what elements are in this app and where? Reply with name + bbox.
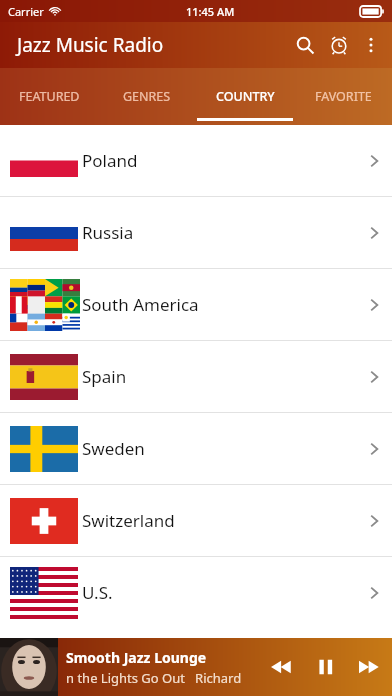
button[interactable]: FAVORITE <box>294 68 392 125</box>
button[interactable]: Switzerland <box>0 485 392 556</box>
button[interactable] <box>0 638 58 696</box>
button[interactable]: Poland <box>0 125 392 196</box>
button[interactable]: U.S. <box>0 557 392 628</box>
staticText: 11:45 AM <box>186 4 235 19</box>
staticText: South America <box>82 293 356 316</box>
staticText: FAVORITE <box>315 88 372 105</box>
staticText: Spain <box>82 365 356 388</box>
staticText: FEATURED <box>19 88 80 105</box>
staticText: Switzerland <box>82 509 356 532</box>
staticText: Sweden <box>82 437 356 460</box>
staticText: U.S. <box>82 581 356 604</box>
button[interactable]: GENRES <box>98 68 196 125</box>
button[interactable]: More options <box>356 30 386 60</box>
staticText: Russia <box>82 221 356 244</box>
staticText: Carrier <box>8 4 44 19</box>
button[interactable]: Previous <box>260 638 304 696</box>
button[interactable]: Sweden <box>0 413 392 484</box>
button[interactable]: South America <box>0 269 392 340</box>
staticText: COUNTRY <box>216 88 275 105</box>
staticText: Smooth Jazz Lounge <box>66 648 207 667</box>
button[interactable]: COUNTRY <box>196 68 294 125</box>
button[interactable]: FEATURED <box>0 68 98 125</box>
button[interactable]: Next <box>348 638 392 696</box>
button[interactable]: Russia <box>0 197 392 268</box>
staticText: n the Lights Go Out Richard Ell <box>66 669 256 687</box>
button[interactable]: Search <box>288 28 322 62</box>
button[interactable]: Spain <box>0 341 392 412</box>
button[interactable]: Sleep timer <box>322 28 356 62</box>
staticText: Poland <box>82 149 356 172</box>
staticText: Jazz Music Radio <box>17 32 164 58</box>
button[interactable]: Pause <box>304 638 348 696</box>
staticText: GENRES <box>123 88 171 105</box>
